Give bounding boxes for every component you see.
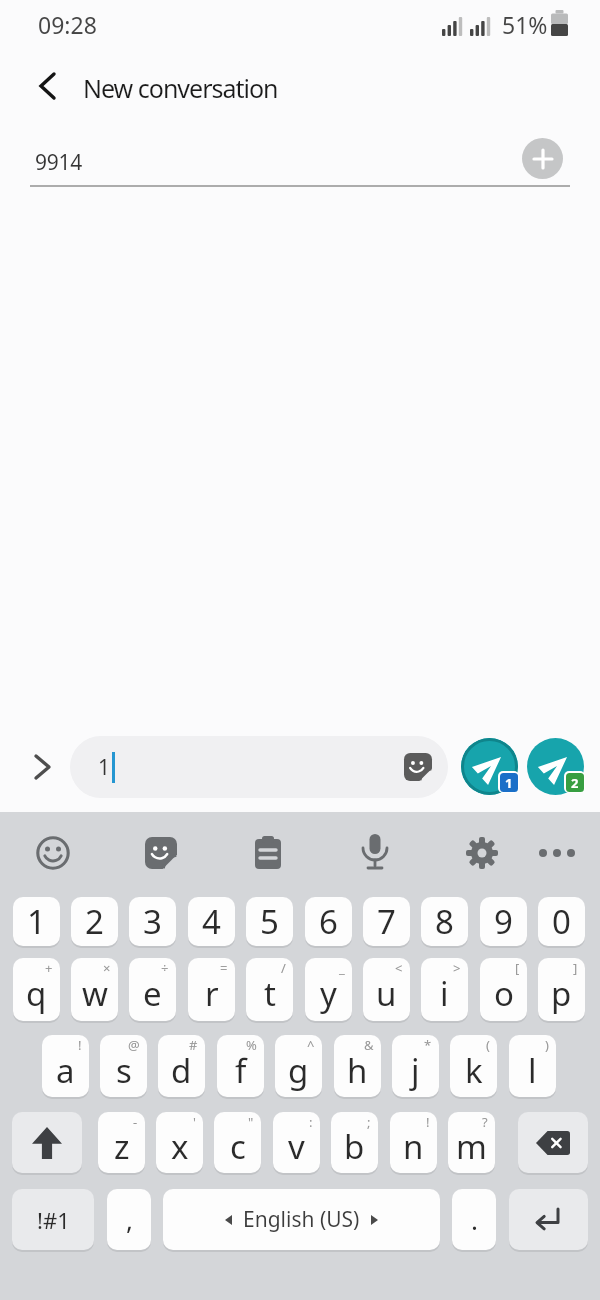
staticText: .	[471, 1202, 478, 1237]
button[interactable]: t	[246, 958, 293, 1021]
staticText: 3	[143, 899, 162, 944]
button[interactable]	[12, 1112, 82, 1173]
button[interactable]: c	[214, 1112, 261, 1173]
staticText: k	[465, 1048, 483, 1093]
staticText: !	[78, 1036, 82, 1054]
staticText: i	[440, 971, 449, 1016]
button[interactable]: a	[42, 1035, 89, 1097]
button[interactable]: 9	[480, 897, 527, 946]
staticText: /	[281, 959, 286, 977]
button[interactable]: q	[13, 958, 60, 1021]
button[interactable]: !#1	[12, 1189, 94, 1250]
button[interactable]: 2	[71, 897, 118, 946]
button[interactable]: 8	[421, 897, 468, 946]
button[interactable]: h	[334, 1035, 381, 1097]
staticText: -	[133, 1113, 138, 1131]
staticText: [	[515, 959, 520, 977]
button[interactable]: 3	[129, 897, 176, 946]
staticText: f	[235, 1048, 247, 1093]
button[interactable]	[518, 1112, 588, 1173]
button[interactable]: n	[390, 1112, 437, 1173]
staticText: <	[395, 959, 403, 977]
button[interactable]: v	[273, 1112, 320, 1173]
staticText: =	[220, 959, 228, 977]
staticText: 5	[260, 899, 279, 944]
button[interactable]: i	[421, 958, 468, 1021]
staticText: 2	[571, 774, 579, 792]
button[interactable]: p	[538, 958, 585, 1021]
staticText: !	[426, 1113, 430, 1131]
button[interactable]	[527, 738, 584, 795]
staticText: 6	[319, 899, 338, 944]
staticText: 8	[435, 899, 454, 944]
button[interactable]: m	[448, 1112, 495, 1173]
button[interactable]: 1	[13, 897, 60, 946]
staticText: 1	[505, 774, 513, 792]
staticText: New conversation	[83, 71, 278, 105]
staticText: x	[171, 1124, 189, 1169]
button[interactable]	[20, 745, 64, 789]
button[interactable]: g	[275, 1035, 322, 1097]
staticText: 7	[377, 899, 396, 944]
button[interactable]: o	[480, 958, 527, 1021]
button[interactable]: x	[156, 1112, 203, 1173]
button[interactable]: w	[71, 958, 118, 1021]
staticText: 2	[85, 899, 104, 944]
button[interactable]	[509, 1189, 588, 1250]
staticText: v	[288, 1124, 305, 1169]
staticText: a	[56, 1048, 75, 1093]
staticText: t	[264, 971, 276, 1016]
button[interactable]: 6	[305, 897, 352, 946]
button[interactable]: 7	[363, 897, 410, 946]
button[interactable]	[522, 138, 563, 179]
staticText: q	[26, 971, 47, 1016]
staticText: d	[171, 1048, 192, 1093]
staticText: 1	[98, 753, 111, 782]
button[interactable]: .	[452, 1189, 496, 1250]
staticText: ÷	[161, 959, 169, 977]
staticText: ^	[307, 1036, 315, 1054]
staticText: ]	[573, 959, 578, 977]
button[interactable]: 4	[188, 897, 235, 946]
button[interactable]: ,	[107, 1189, 151, 1250]
staticText: ,	[126, 1202, 133, 1237]
staticText: h	[347, 1048, 368, 1093]
button[interactable]: e	[129, 958, 176, 1021]
button[interactable]: u	[363, 958, 410, 1021]
staticText: !#1	[37, 1205, 70, 1235]
button[interactable]: English (US)	[163, 1189, 440, 1250]
staticText: "	[248, 1113, 254, 1131]
button[interactable]	[461, 738, 518, 795]
staticText: #	[189, 1036, 198, 1054]
button[interactable]: l	[509, 1035, 556, 1097]
staticText: z	[114, 1124, 130, 1169]
staticText: ?	[482, 1113, 488, 1131]
staticText: &	[364, 1036, 374, 1054]
button[interactable]	[24, 62, 72, 110]
staticText: %	[246, 1036, 257, 1054]
staticText: y	[320, 971, 337, 1016]
button[interactable]: y	[305, 958, 352, 1021]
staticText: b	[344, 1124, 365, 1169]
button[interactable]: j	[392, 1035, 439, 1097]
staticText: 51%	[502, 9, 548, 40]
staticText: +	[45, 959, 53, 977]
staticText: '	[193, 1113, 196, 1131]
button[interactable]: 1	[70, 736, 448, 798]
button[interactable]: 5	[246, 897, 293, 946]
staticText: n	[403, 1124, 424, 1169]
staticText: r	[205, 971, 219, 1016]
staticText: u	[376, 971, 397, 1016]
button[interactable]: 0	[538, 897, 585, 946]
button[interactable]: s	[100, 1035, 147, 1097]
staticText: g	[288, 1048, 309, 1093]
button[interactable]: k	[450, 1035, 497, 1097]
button[interactable]: z	[98, 1112, 145, 1173]
button[interactable]: b	[331, 1112, 378, 1173]
button[interactable]: d	[158, 1035, 205, 1097]
staticText: p	[551, 971, 572, 1016]
button[interactable]: f	[217, 1035, 264, 1097]
button[interactable]: r	[188, 958, 235, 1021]
staticText: 0	[552, 899, 571, 944]
staticText: c	[230, 1124, 246, 1169]
